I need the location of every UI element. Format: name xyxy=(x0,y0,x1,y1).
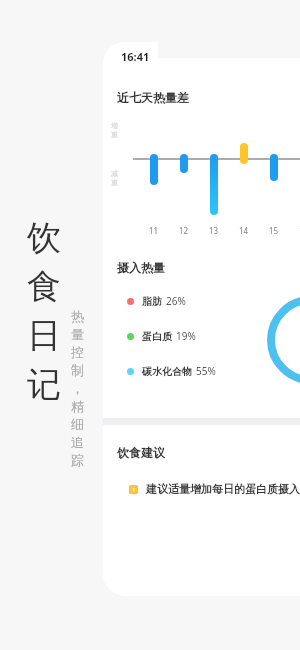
staticText: 记 xyxy=(27,363,61,412)
staticText: 热 xyxy=(71,308,84,326)
staticText: 19% xyxy=(176,329,196,343)
staticText: 近七天热量差 xyxy=(117,90,189,105)
staticText: 蛋白质 xyxy=(142,330,172,343)
staticText: 踪 xyxy=(71,452,84,470)
staticText: 追 xyxy=(71,434,84,452)
staticText: 11 xyxy=(149,225,159,236)
staticText: 制 xyxy=(71,362,84,380)
staticText: 碳水化合物 xyxy=(142,365,192,378)
staticText: 控 xyxy=(71,344,84,362)
staticText: 重 xyxy=(111,178,118,187)
staticText: 15 xyxy=(269,225,279,236)
staticText: 食 xyxy=(27,265,61,314)
staticText: 12 xyxy=(179,225,189,236)
staticText: 16:41 xyxy=(121,49,150,64)
staticText: 饮食建议 xyxy=(117,445,165,460)
staticText: 精 xyxy=(71,398,84,416)
staticText: 14 xyxy=(239,225,249,236)
staticText: 摄入热量 xyxy=(117,260,165,275)
staticText: 1 xyxy=(132,486,136,494)
button[interactable]: 摄入热量 xyxy=(103,258,300,418)
staticText: 日 xyxy=(27,314,61,363)
staticText: 26% xyxy=(166,294,186,308)
staticText: ， xyxy=(71,380,84,398)
staticText: 重 xyxy=(111,130,118,139)
staticText: 13 xyxy=(209,225,219,236)
staticText: 55% xyxy=(196,364,216,378)
staticText: 脂肪 xyxy=(142,295,162,308)
staticText: 16 xyxy=(299,225,300,236)
staticText: 量 xyxy=(71,326,84,344)
button[interactable]: 饮食建议 xyxy=(103,425,300,496)
staticText: 饮 xyxy=(27,216,61,265)
staticText: 增 xyxy=(111,121,118,130)
button[interactable]: 近七天热量差 xyxy=(103,70,300,236)
staticText: 建议适量增加每日的蛋白质摄入 xyxy=(146,482,300,496)
staticText: 减 xyxy=(111,169,118,178)
staticText: 细 xyxy=(71,416,84,434)
